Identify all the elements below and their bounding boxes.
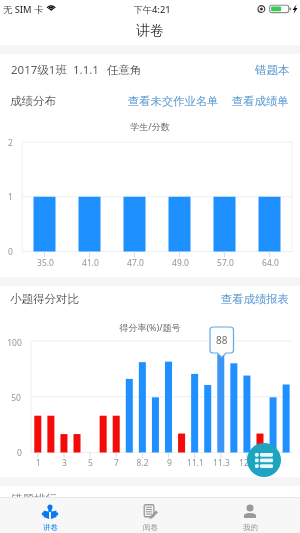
staticText: 35.0 bbox=[37, 257, 54, 269]
button[interactable]: 阅卷 bbox=[100, 498, 200, 533]
button[interactable]: 讲卷 bbox=[0, 498, 100, 533]
staticText: 8.2 bbox=[136, 457, 149, 469]
staticText: 100 bbox=[7, 337, 22, 349]
staticText: 1 bbox=[36, 457, 41, 469]
staticText: 查看成绩报表 bbox=[221, 292, 289, 306]
staticText: 学生/分数 bbox=[130, 120, 170, 132]
staticText: 成绩分布 bbox=[10, 94, 56, 108]
staticText: 50 bbox=[11, 392, 21, 404]
staticText: 阅卷 bbox=[143, 523, 158, 532]
staticText: 错题本 bbox=[255, 63, 290, 77]
button[interactable]: 题目列表 bbox=[247, 443, 281, 477]
staticText: 12.1 bbox=[239, 457, 256, 469]
staticText: 讲卷 bbox=[136, 22, 164, 40]
staticText: 5 bbox=[88, 457, 93, 469]
staticText: 0 bbox=[8, 246, 13, 258]
staticText: 11.1 bbox=[187, 457, 204, 469]
staticText: 得分率(%)/题号 bbox=[119, 321, 181, 333]
staticText: 57.0 bbox=[217, 257, 234, 269]
staticText: 1.1.1 bbox=[73, 62, 99, 78]
staticText: 下午4:21 bbox=[133, 3, 171, 16]
staticText: 无 SIM 卡 bbox=[3, 3, 44, 16]
staticText: 错题排行 bbox=[11, 492, 57, 506]
staticText: 3 bbox=[62, 457, 67, 469]
staticText: 0 bbox=[17, 447, 22, 459]
staticText: 11.3 bbox=[213, 457, 230, 469]
staticText: 41.0 bbox=[82, 257, 99, 269]
staticText: 我的 bbox=[243, 523, 258, 532]
staticText: 讲卷 bbox=[43, 523, 58, 532]
staticText: 查看成绩单 bbox=[232, 94, 289, 108]
staticText: 任意角 bbox=[107, 63, 142, 77]
staticText: 1 bbox=[8, 191, 13, 203]
button[interactable]: 查看成绩单 bbox=[232, 94, 289, 108]
button[interactable]: 查看成绩报表 bbox=[221, 292, 289, 306]
staticText: 64.0 bbox=[262, 257, 279, 269]
staticText: 小题得分对比 bbox=[10, 292, 79, 306]
button[interactable]: 查看未交作业名单 bbox=[128, 94, 219, 108]
staticText: 49.0 bbox=[172, 257, 189, 269]
staticText: 9 bbox=[167, 457, 172, 469]
staticText: 查看未交作业名单 bbox=[128, 94, 219, 108]
staticText: 7 bbox=[114, 457, 119, 469]
button[interactable]: 我的 bbox=[200, 498, 300, 533]
button[interactable]: 错题本 bbox=[255, 63, 290, 77]
staticText: 2 bbox=[8, 137, 13, 149]
staticText: 47.0 bbox=[127, 257, 144, 269]
staticText: 2017级1班 bbox=[11, 62, 67, 78]
staticText: 88 bbox=[216, 333, 228, 347]
